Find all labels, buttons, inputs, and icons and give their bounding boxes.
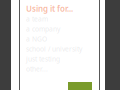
staticText: other... (26, 65, 48, 73)
button[interactable]: just testing (26, 54, 60, 64)
staticText: school / university (26, 45, 82, 53)
staticText: a NGO (26, 35, 47, 43)
button[interactable]: a NGO (26, 34, 47, 44)
staticText: a company (26, 25, 60, 33)
button[interactable]: school / university (26, 44, 82, 54)
button[interactable]: other... (26, 64, 48, 74)
staticText: Using it for... (26, 3, 73, 14)
staticText: just testing (26, 55, 60, 63)
button[interactable]: a team (26, 14, 48, 24)
staticText: a team (26, 15, 48, 23)
button[interactable]: a company (26, 24, 60, 34)
